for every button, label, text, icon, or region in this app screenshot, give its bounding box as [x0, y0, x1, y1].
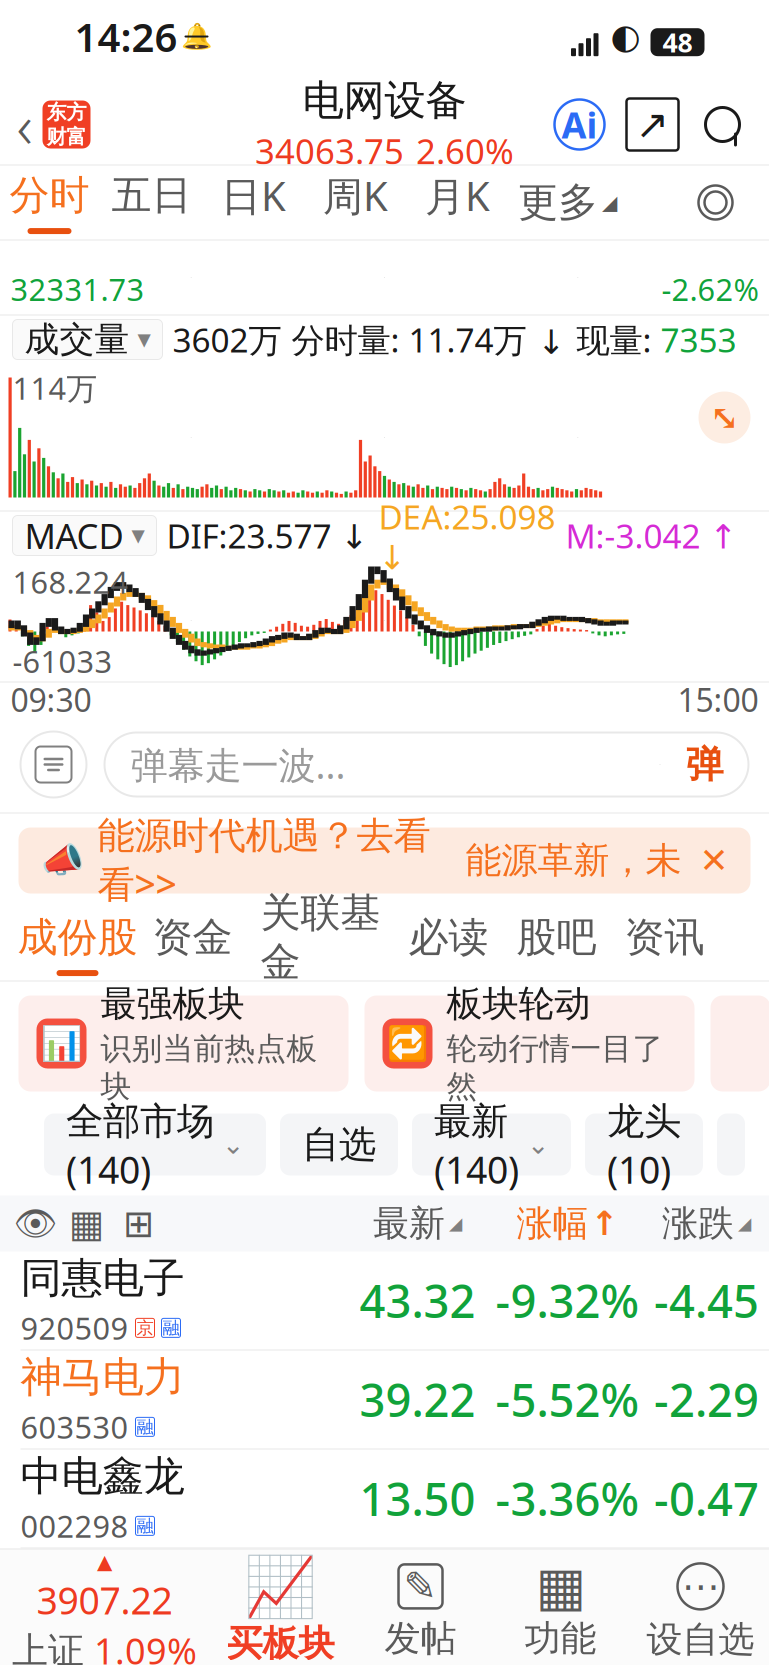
- button[interactable]: MACD: [12, 515, 156, 555]
- staticText: 融: [162, 1317, 179, 1338]
- staticText: -0.47: [654, 1468, 759, 1529]
- staticText: 关联基金: [260, 888, 380, 987]
- button[interactable]: 成交量: [12, 319, 162, 359]
- staticText: 日K: [221, 169, 286, 222]
- staticText: ⌄: [527, 1129, 549, 1160]
- staticText: ▲: [97, 1550, 112, 1573]
- button[interactable]: 更多: [508, 165, 626, 239]
- staticText: Ai: [561, 101, 597, 148]
- staticText: 发帖: [384, 1616, 456, 1661]
- button[interactable]: 同惠电子: [0, 1251, 769, 1350]
- button[interactable]: Add column: [112, 1195, 164, 1251]
- button[interactable]: Comment list: [20, 731, 86, 797]
- staticText: 能源时代机遇？去看看>>: [97, 813, 430, 908]
- staticText: 分时: [9, 171, 89, 220]
- staticText: -3.36%: [495, 1468, 639, 1529]
- staticText: ✕: [699, 841, 728, 880]
- staticText: ▼: [137, 330, 150, 349]
- staticText: 7353: [660, 317, 736, 362]
- button[interactable]: 📈: [210, 1548, 350, 1665]
- staticText: 必读: [408, 913, 488, 962]
- button[interactable]: 周K: [304, 165, 406, 239]
- button[interactable]: 资金: [138, 907, 246, 981]
- button[interactable]: Hide columns: [10, 1195, 60, 1251]
- staticText: 龙头 (10): [607, 1095, 681, 1194]
- button[interactable]: 股吧: [502, 907, 610, 981]
- button[interactable]: ▲: [0, 1548, 210, 1665]
- staticText: 买板块: [226, 1621, 334, 1665]
- staticText: 上证: [12, 1628, 84, 1665]
- button[interactable]: 🔁: [364, 995, 694, 1091]
- staticText: 成交量: [24, 318, 129, 361]
- button[interactable]: ▦: [490, 1548, 630, 1665]
- button[interactable]: 📣: [18, 827, 750, 893]
- button[interactable]: 分时: [0, 165, 100, 239]
- staticText: M:-3.042 ↑: [565, 513, 737, 558]
- button[interactable]: Search: [678, 96, 769, 152]
- button[interactable]: 📊: [18, 995, 348, 1091]
- button[interactable]: AI assistant: [554, 99, 604, 149]
- staticText: 京: [136, 1317, 153, 1338]
- staticText: DIF:23.577 ↓: [166, 513, 368, 558]
- button[interactable]: 资讯: [610, 907, 718, 981]
- button[interactable]: 五日: [100, 165, 202, 239]
- button[interactable]: 全部市场 (140): [44, 1113, 266, 1175]
- staticText: MACD: [24, 512, 123, 558]
- staticText: 📊: [40, 1024, 82, 1063]
- staticText: 月K: [425, 169, 490, 222]
- staticText: 168.224: [12, 561, 128, 602]
- staticText: ◢: [449, 1214, 462, 1233]
- button[interactable]: 中电鑫龙: [0, 1449, 769, 1548]
- button[interactable]: Full screen chart: [698, 391, 750, 443]
- button[interactable]: Share: [604, 98, 678, 150]
- button[interactable]: 月K: [406, 165, 508, 239]
- staticText: 五日: [111, 171, 191, 220]
- button[interactable]: 关联基金: [246, 907, 394, 981]
- button[interactable]: 弹幕走一波...: [104, 732, 748, 796]
- staticText: 融: [136, 1416, 153, 1437]
- button[interactable]: Back: [0, 87, 90, 161]
- button[interactable]: Chart settings: [680, 165, 769, 239]
- button[interactable]: 必读: [394, 907, 502, 981]
- staticText: ◐: [610, 17, 640, 56]
- staticText: 中电鑫龙: [20, 1451, 184, 1502]
- staticText: -2.29: [654, 1369, 759, 1430]
- staticText: ↑: [590, 1205, 618, 1242]
- staticText: 东方: [46, 100, 86, 124]
- button[interactable]: 涨跌: [642, 1195, 769, 1251]
- staticText: 识别当前热点板块: [100, 1030, 317, 1105]
- staticText: ✎: [403, 1564, 437, 1609]
- button[interactable]: 自选: [280, 1113, 398, 1175]
- staticText: 114万: [12, 367, 97, 408]
- staticText: ⊞: [123, 1202, 154, 1245]
- staticText: -5.52%: [495, 1369, 639, 1430]
- button[interactable]: 神马电力: [0, 1350, 769, 1449]
- button[interactable]: 成份股: [16, 907, 138, 981]
- button[interactable]: ⋯: [630, 1548, 769, 1665]
- staticText: 920509: [20, 1307, 128, 1348]
- staticText: 股吧: [516, 913, 596, 962]
- button[interactable]: 最新 (140): [412, 1113, 571, 1175]
- staticText: 周K: [323, 169, 388, 222]
- staticText: ▦: [69, 1202, 104, 1245]
- staticText: DEA:25.098 ↓: [378, 494, 555, 577]
- button[interactable]: 涨幅: [492, 1195, 642, 1251]
- staticText: 3907.22: [36, 1575, 172, 1625]
- staticText: -9.32%: [495, 1270, 639, 1331]
- staticText: ‹: [16, 84, 32, 165]
- staticText: 自选: [302, 1122, 376, 1167]
- staticText: 涨幅: [516, 1201, 588, 1246]
- button[interactable]: Grid view: [60, 1195, 112, 1251]
- button[interactable]: 最新: [342, 1195, 492, 1251]
- button[interactable]: ✎: [350, 1548, 490, 1665]
- button[interactable]: 日K: [202, 165, 304, 239]
- staticText: 融: [136, 1515, 153, 1536]
- staticText: ◢: [602, 191, 617, 214]
- staticText: 同惠电子: [20, 1253, 184, 1304]
- staticText: ◢: [738, 1214, 751, 1233]
- staticText: 2.60%: [416, 128, 514, 174]
- button[interactable]: 龙头 (10): [585, 1113, 703, 1175]
- staticText: 电网设备: [302, 75, 466, 126]
- staticText: 设自选: [646, 1617, 754, 1662]
- staticText: 弹: [686, 742, 723, 787]
